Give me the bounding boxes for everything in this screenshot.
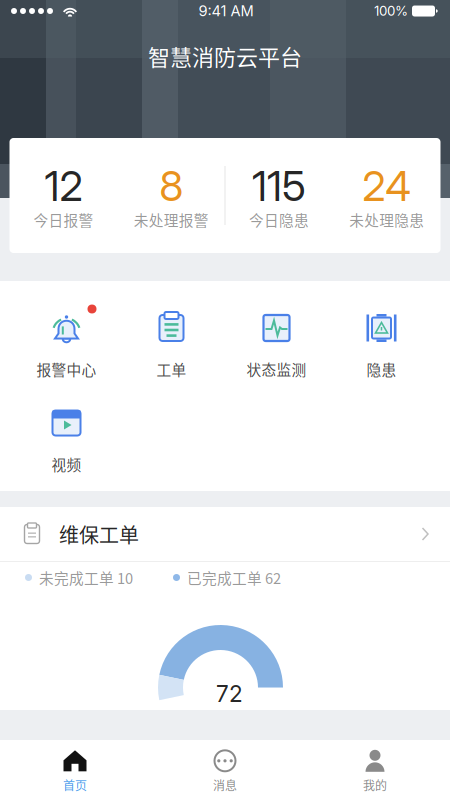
staticText: 8 <box>159 161 183 211</box>
staticText: 100% <box>374 3 408 19</box>
staticText: 未处理报警 <box>134 209 209 230</box>
staticText: 115 <box>252 161 306 211</box>
button[interactable]: 报警中心 <box>14 311 119 391</box>
button[interactable]: 视频 <box>14 406 119 486</box>
staticText: 维保工单 <box>59 519 139 548</box>
button[interactable]: 维保工单 <box>0 507 450 561</box>
staticText: 今日报警 <box>33 209 93 230</box>
button[interactable]: 隐患 <box>329 311 434 391</box>
staticText: 视频 <box>51 453 81 475</box>
button[interactable]: 我的 <box>300 740 450 800</box>
button[interactable]: 工单 <box>119 311 224 391</box>
staticText: 今日隐患 <box>249 209 309 230</box>
staticText: 隐患 <box>366 358 396 380</box>
staticText: 9:41 AM <box>198 2 253 20</box>
staticText: 智慧消防云平台 <box>148 40 302 72</box>
staticText: 工单 <box>156 358 186 380</box>
staticText: 24 <box>362 161 411 211</box>
staticText: 首页 <box>63 776 87 794</box>
staticText: 我的 <box>363 776 387 794</box>
button[interactable]: 消息 <box>150 740 300 800</box>
staticText: 12 <box>44 161 82 211</box>
staticText: 报警中心 <box>36 358 96 380</box>
staticText: 未完成工单 10 <box>39 567 133 588</box>
staticText: 未处理隐患 <box>349 209 424 230</box>
staticText: 消息 <box>213 776 237 794</box>
button[interactable]: 首页 <box>0 740 150 800</box>
staticText: 已完成工单 62 <box>187 567 281 588</box>
staticText: 状态监测 <box>246 358 306 380</box>
button[interactable]: 状态监测 <box>224 311 329 391</box>
staticText: 72 <box>216 680 243 707</box>
